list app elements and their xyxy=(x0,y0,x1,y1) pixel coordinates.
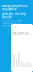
staticText: you go, on any device xyxy=(2,12,26,19)
staticText: Fast, secure checkout built for xyxy=(2,20,22,22)
staticText: $4,280.55 xyxy=(13,32,29,35)
staticText: Today xyxy=(13,26,18,28)
staticText: small teams and solo founders xyxy=(2,22,22,24)
staticText: Accept payments anywhere xyxy=(2,4,27,11)
staticText: Start your free trial today xyxy=(2,25,22,27)
